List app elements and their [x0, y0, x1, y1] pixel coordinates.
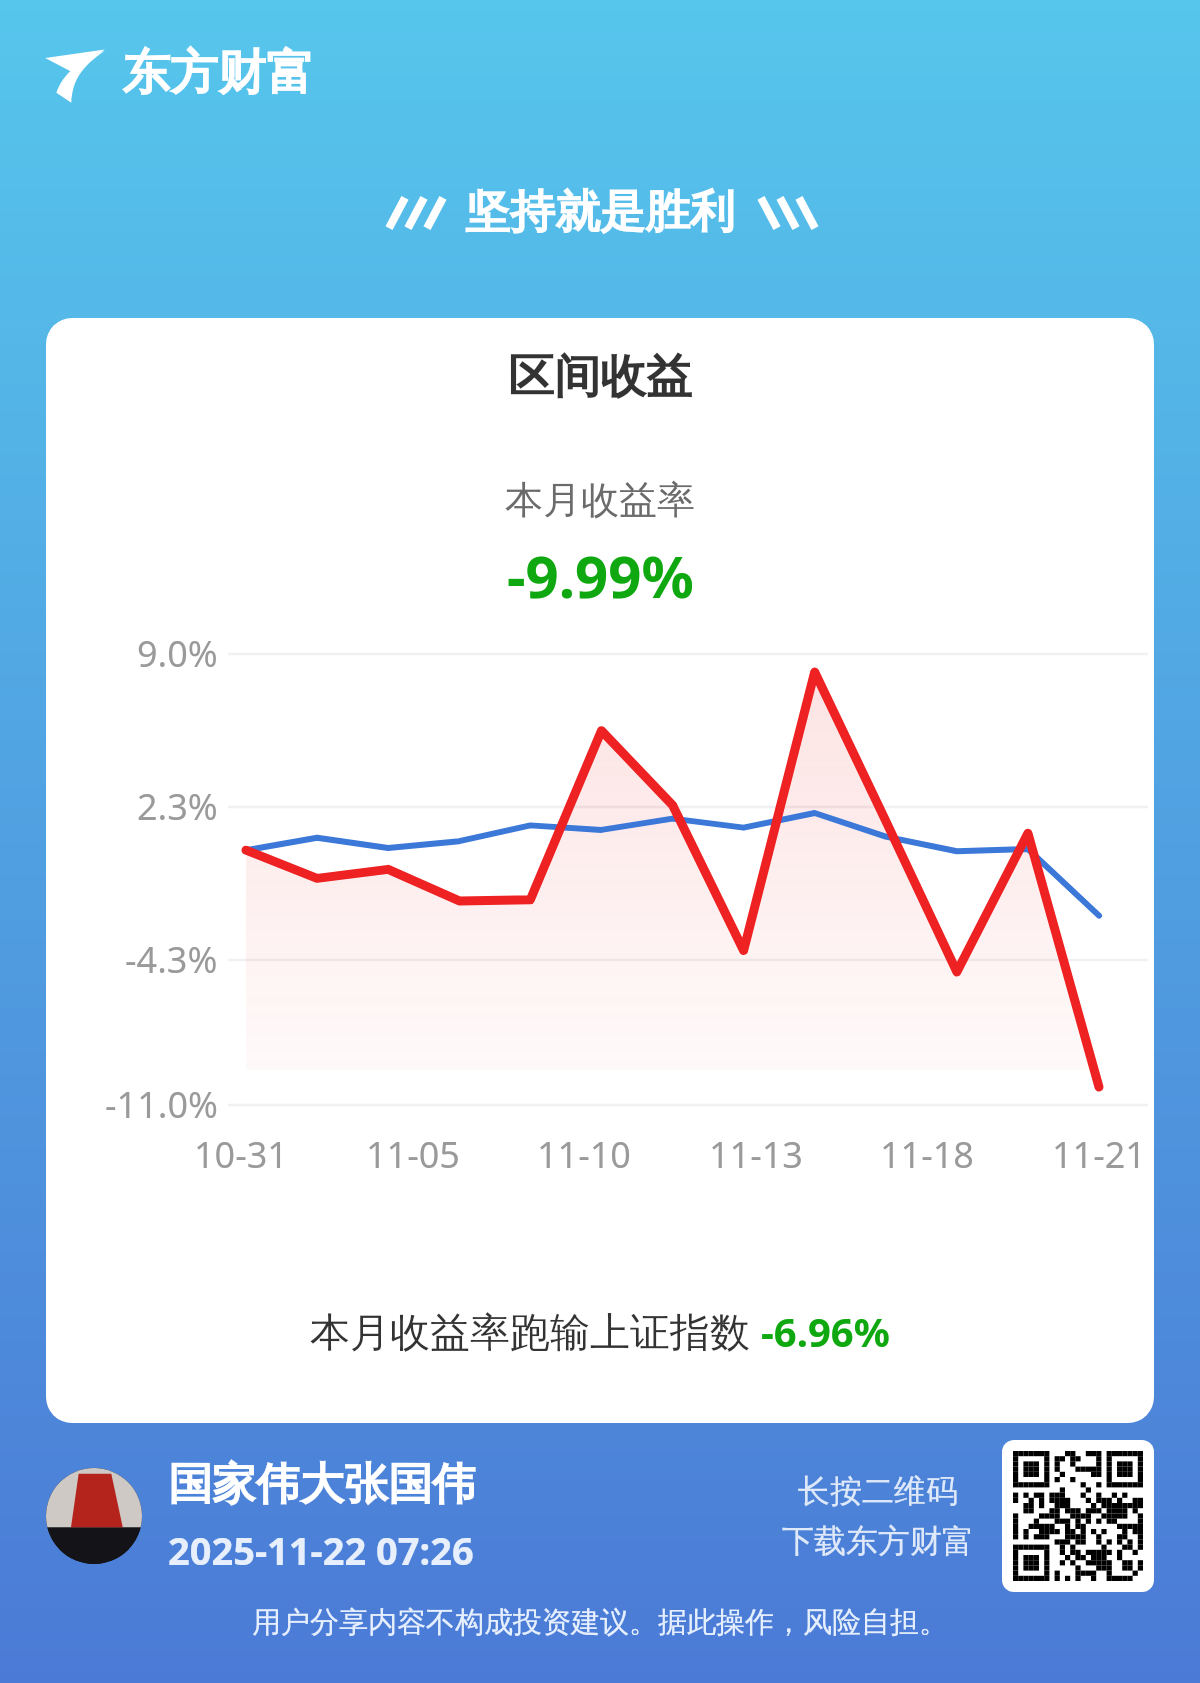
staticText: -4.3% — [125, 935, 218, 984]
staticText: 下载东方财富 — [782, 1521, 974, 1561]
staticText: -9.99% — [507, 536, 694, 615]
staticText: 11-18 — [880, 1130, 974, 1179]
staticText: 本月收益率 — [505, 476, 695, 524]
staticText: 11-10 — [537, 1130, 631, 1179]
staticText: 11-13 — [709, 1130, 803, 1179]
button[interactable]: 东方财富 — [44, 42, 314, 104]
staticText: 10-31 — [194, 1130, 288, 1179]
staticText: 区间收益 — [508, 348, 692, 406]
staticText: 11-05 — [366, 1130, 460, 1179]
staticText: 东方财富 — [122, 43, 314, 103]
staticText: 本月收益率跑输上证指数 — [310, 1303, 761, 1358]
staticText: 坚持就是胜利 — [465, 184, 735, 241]
button[interactable]: 区间收益 — [46, 318, 1154, 1423]
button[interactable]: 用户头像 — [46, 1468, 142, 1564]
staticText: 长按二维码 — [798, 1471, 958, 1511]
staticText: 2.3% — [137, 782, 218, 831]
staticText: -6.96% — [761, 1304, 890, 1358]
staticText: 9.0% — [137, 629, 218, 678]
button[interactable]: 二维码 — [1002, 1440, 1154, 1592]
staticText: 用户分享内容不构成投资建议。据此操作，风险自担。 — [252, 1604, 948, 1641]
staticText: -11.0% — [105, 1080, 218, 1129]
staticText: 2025-11-22 07:26 — [168, 1524, 474, 1576]
staticText: 11-21 — [1052, 1130, 1146, 1179]
staticText: 国家伟大张国伟 — [168, 1457, 476, 1512]
